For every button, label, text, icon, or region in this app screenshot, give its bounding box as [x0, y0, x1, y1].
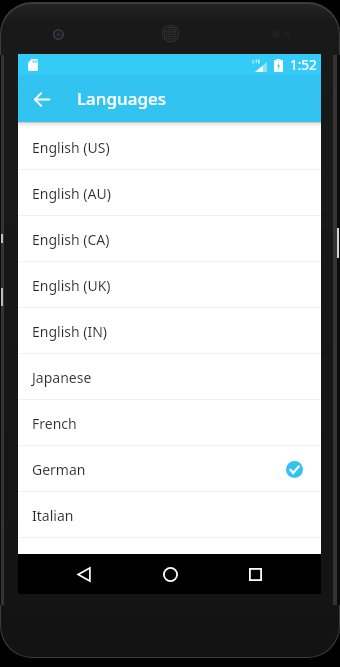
staticText: Italian: [32, 506, 74, 525]
staticText: English (IN): [32, 322, 108, 341]
button[interactable]: Back: [64, 554, 104, 594]
button[interactable]: French: [18, 400, 321, 446]
staticText: Japanese: [32, 368, 92, 387]
staticText: English (CA): [32, 230, 110, 249]
staticText: English (UK): [32, 276, 111, 295]
button[interactable]: English (CA): [18, 216, 321, 262]
button[interactable]: Italian: [18, 492, 321, 538]
button[interactable]: English (US): [18, 124, 321, 170]
button[interactable]: Back: [25, 82, 59, 116]
staticText: Languages: [77, 87, 166, 110]
button[interactable]: German: [18, 446, 321, 492]
staticText: English (AU): [32, 184, 111, 203]
staticText: English (US): [32, 138, 110, 157]
button[interactable]: English (IN): [18, 308, 321, 354]
staticText: 1:52: [290, 56, 317, 74]
button[interactable]: English (UK): [18, 262, 321, 308]
button[interactable]: Recent apps: [235, 554, 275, 594]
button[interactable]: English (AU): [18, 170, 321, 216]
staticText: French: [32, 414, 77, 433]
button[interactable]: Home: [150, 554, 190, 594]
staticText: German: [32, 460, 86, 479]
button[interactable]: Japanese: [18, 354, 321, 400]
